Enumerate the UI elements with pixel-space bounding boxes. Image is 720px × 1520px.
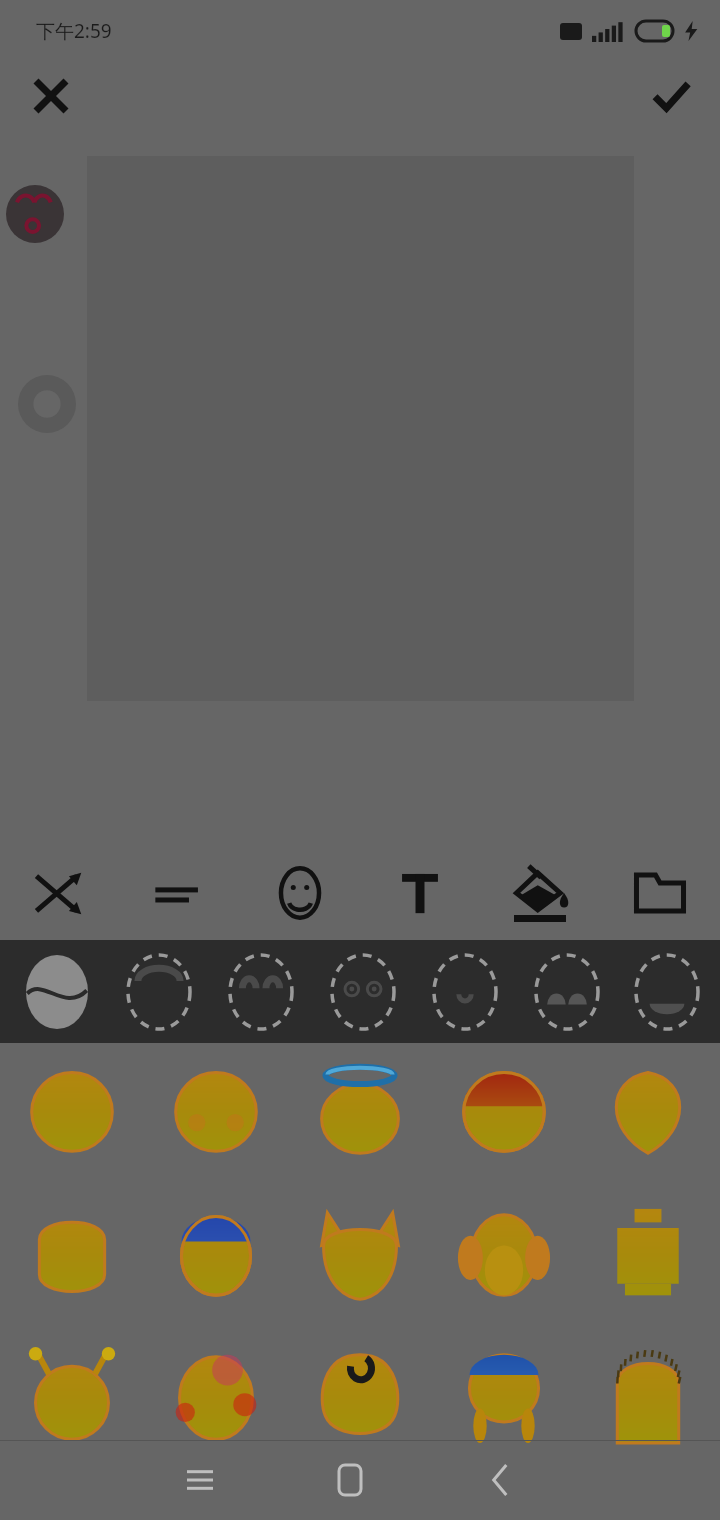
button[interactable]: Emoji 13 [298,1335,422,1459]
button[interactable]: Face part 5 [419,945,511,1038]
button[interactable]: Emoji 4 [442,1049,566,1173]
button[interactable]: Emoji 12 [154,1335,278,1459]
button[interactable]: Emoji 5 [586,1049,710,1173]
button[interactable]: Back [450,1440,550,1520]
button[interactable]: Emoji 7 [154,1193,278,1317]
button[interactable]: Text [372,845,468,940]
button[interactable]: Face part 6 [521,945,613,1038]
button[interactable]: Emoji 9 [442,1193,566,1317]
button[interactable]: Face part 4 [317,945,409,1038]
button[interactable]: Shuffle [12,845,108,940]
button[interactable]: Emoji 15 [586,1335,710,1459]
button[interactable]: Face part 3 [215,945,307,1038]
button[interactable]: Current sticker [6,185,64,243]
button[interactable]: Emoji 2 [154,1049,278,1173]
button[interactable]: Lines [132,845,228,940]
button[interactable]: Recents [150,1440,250,1520]
button[interactable]: Emoji 14 [442,1335,566,1459]
button[interactable]: Fill color [492,845,588,940]
button[interactable]: Emoji 11 [10,1335,134,1459]
staticText: 下午2:59 [36,18,112,44]
button[interactable]: Shape tool [18,375,76,433]
button[interactable]: Emoji 8 [298,1193,422,1317]
button[interactable]: Done [642,67,700,125]
button[interactable]: Emoji [252,845,348,940]
button[interactable]: Face part 2 [113,945,205,1038]
button[interactable]: Emoji 6 [10,1193,134,1317]
button[interactable]: Close [22,67,80,125]
button[interactable]: Folder [612,845,708,940]
button[interactable]: Emoji 10 [586,1193,710,1317]
button[interactable]: Home [300,1440,400,1520]
button[interactable]: Emoji 3 [298,1049,422,1173]
button[interactable]: Emoji 1 [10,1049,134,1173]
button[interactable]: Face part 1 [11,945,103,1038]
button[interactable]: Face part 7 [621,945,713,1038]
